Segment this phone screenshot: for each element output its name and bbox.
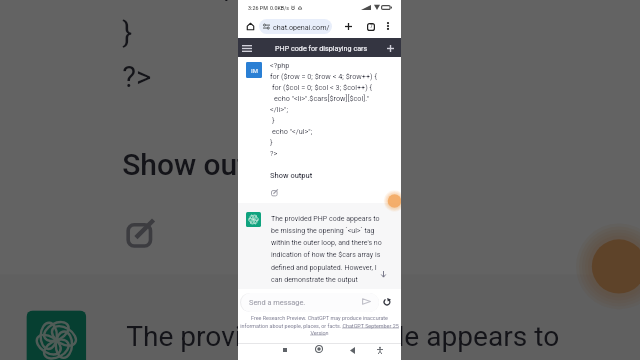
staticText: </li>";	[270, 105, 288, 114]
staticText: 7	[370, 24, 373, 30]
staticText: 3:26 PM	[248, 5, 268, 11]
staticText: Show output	[270, 171, 313, 180]
button[interactable]: Recent apps	[281, 346, 288, 353]
button[interactable]: More options	[382, 20, 394, 32]
staticText: ?>	[270, 149, 278, 158]
button[interactable]: New chat	[382, 40, 398, 56]
button[interactable]: Home	[315, 345, 323, 353]
button[interactable]: Menu	[239, 40, 255, 56]
staticText: indication of how the $cars array is	[271, 250, 381, 258]
staticText: Version	[238, 330, 401, 336]
staticText: 0.0KB/s	[270, 5, 289, 11]
staticText: }	[272, 116, 275, 125]
button[interactable]: New tab	[342, 20, 355, 33]
button[interactable]	[241, 293, 379, 312]
button[interactable]: Edit message	[271, 189, 278, 196]
staticText: for ($row = 0; $row < 4; $row++) {	[270, 72, 377, 81]
button[interactable]: Back	[348, 346, 356, 354]
staticText: <?php	[270, 61, 290, 70]
button[interactable]: Edit message	[126, 219, 154, 246]
staticText: The provided PHP code appears to	[126, 318, 561, 350]
staticText: for ($col = 0; $col < 3; $col++) {	[272, 83, 373, 92]
staticText: chat.openai.com/	[273, 23, 330, 31]
staticText: echo "</ul>";	[272, 127, 313, 136]
staticText: PHP code for displaying cars	[275, 44, 368, 52]
staticText: defined and populated. However, I	[271, 263, 377, 271]
staticText: The provided PHP code appears to	[271, 214, 380, 222]
staticText: }	[122, 15, 134, 51]
staticText: echo "</ul>";	[130, 0, 294, 7]
button[interactable]: Tabs	[364, 20, 377, 33]
staticText: }	[270, 138, 273, 147]
staticText: ?>	[122, 59, 154, 95]
button[interactable]: Regenerate response	[380, 295, 394, 309]
staticText: Send a message.	[249, 298, 306, 307]
staticText: information about people, places, or fac…	[238, 323, 401, 329]
staticText: Free Research Preview. ChatGPT may produ…	[238, 315, 401, 321]
staticText: be missing the opening `<ul>` tag	[271, 226, 375, 234]
staticText: Show output	[122, 147, 294, 183]
staticText: echo "<li>".$cars[$row][$col]."	[274, 94, 369, 103]
staticText: IM	[251, 67, 258, 74]
staticText: within the outer loop, and there's no	[271, 238, 382, 246]
staticText: can demonstrate the output	[271, 275, 358, 283]
button[interactable]: Accessibility	[376, 346, 384, 354]
button[interactable]: chat.openai.com/	[259, 19, 332, 34]
button[interactable]: Home	[244, 20, 256, 32]
